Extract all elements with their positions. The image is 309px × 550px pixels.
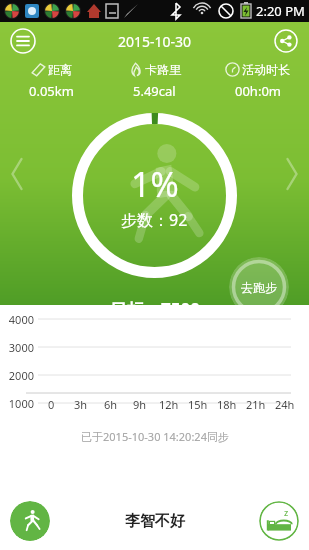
staticText: 0.05km bbox=[29, 82, 74, 100]
staticText: 00h:0m bbox=[235, 82, 281, 100]
staticText: 去跑步 bbox=[241, 280, 277, 295]
staticText: 5.49cal bbox=[133, 82, 176, 100]
staticText: 距离 bbox=[48, 62, 72, 77]
button[interactable]: Next day bbox=[283, 159, 301, 189]
staticText: 9h bbox=[133, 397, 147, 412]
button[interactable]: 卡路里 bbox=[103, 62, 206, 100]
staticText: 2:20 PM bbox=[256, 2, 305, 20]
staticText: 0 bbox=[48, 397, 55, 412]
staticText: 1000 bbox=[4, 396, 34, 411]
staticText: 活动时长 bbox=[242, 62, 290, 77]
button[interactable]: 距离 bbox=[0, 62, 103, 100]
staticText: 目标：7500 bbox=[110, 298, 200, 305]
staticText: 4000 bbox=[4, 312, 34, 327]
button[interactable]: Steps bbox=[10, 501, 50, 541]
staticText: 卡路里 bbox=[145, 62, 181, 77]
staticText: 3h bbox=[74, 397, 88, 412]
staticText: 15h bbox=[188, 397, 208, 412]
staticText: 6h bbox=[104, 397, 118, 412]
button[interactable]: Previous day bbox=[8, 159, 26, 189]
staticText: 已于2015-10-30 14:20:24同步 bbox=[81, 429, 229, 444]
staticText: 24h bbox=[275, 397, 295, 412]
staticText: z bbox=[284, 506, 289, 518]
button[interactable]: Menu bbox=[8, 26, 38, 56]
staticText: 步数：92 bbox=[121, 209, 188, 231]
button[interactable]: 去跑步 bbox=[229, 257, 289, 317]
button[interactable]: Sleep bbox=[259, 501, 299, 541]
staticText: 李智不好 bbox=[125, 512, 185, 531]
button[interactable]: 活动时长 bbox=[206, 62, 309, 100]
staticText: 2000 bbox=[4, 368, 34, 383]
staticText: 12h bbox=[159, 397, 179, 412]
button[interactable]: Share bbox=[271, 26, 301, 56]
staticText: 2015-10-30 bbox=[118, 32, 192, 51]
staticText: 1% bbox=[131, 161, 179, 207]
staticText: 18h bbox=[217, 397, 237, 412]
staticText: 3000 bbox=[4, 340, 34, 355]
staticText: 21h bbox=[246, 397, 266, 412]
